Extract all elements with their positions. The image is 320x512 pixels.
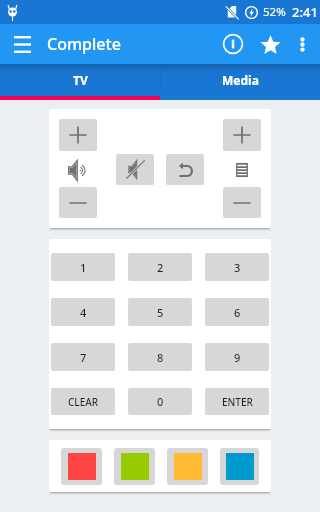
staticText: 0	[157, 394, 164, 409]
button[interactable]: Blue button	[220, 448, 259, 485]
staticText: 3	[234, 260, 241, 275]
button[interactable]: 9	[205, 343, 269, 371]
button[interactable]: 2	[128, 253, 192, 281]
button[interactable]: Open navigation drawer	[6, 28, 38, 60]
button[interactable]: Volume up	[59, 119, 97, 151]
staticText: 6	[234, 305, 241, 320]
staticText: 8	[157, 350, 164, 365]
button[interactable]: Favorite	[252, 24, 288, 64]
button[interactable]: CLEAR	[51, 388, 115, 415]
button[interactable]: 6	[205, 298, 269, 326]
button[interactable]: Yellow button	[167, 448, 208, 485]
button[interactable]: ENTER	[205, 388, 269, 415]
staticText: 5	[157, 305, 164, 320]
button[interactable]: 5	[128, 298, 192, 326]
button[interactable]: 8	[128, 343, 192, 371]
button[interactable]: Red button	[61, 448, 102, 485]
button[interactable]: 1	[51, 253, 115, 281]
staticText: 2:41	[292, 3, 318, 21]
button[interactable]: Back	[166, 154, 204, 185]
button[interactable]: Mute	[116, 154, 154, 185]
staticText: TV	[73, 72, 88, 88]
button[interactable]: Channel up	[223, 119, 261, 151]
button[interactable]: 3	[205, 253, 269, 281]
staticText: 1	[80, 260, 87, 275]
staticText: ENTER	[222, 395, 253, 409]
button[interactable]: 0	[128, 388, 192, 415]
staticText: Media	[222, 72, 259, 88]
button[interactable]: Channel list	[223, 153, 261, 187]
button[interactable]: 4	[51, 298, 115, 326]
button[interactable]: Channel down	[223, 187, 261, 218]
button[interactable]: Green button	[114, 448, 155, 485]
button[interactable]: TV	[0, 64, 160, 96]
button[interactable]: Power	[214, 24, 252, 64]
button[interactable]: Volume	[59, 153, 97, 187]
staticText: 52%	[263, 4, 286, 20]
button[interactable]: Volume down	[59, 187, 97, 218]
staticText: 2	[157, 260, 164, 275]
staticText: 4	[80, 305, 87, 320]
button[interactable]: 7	[51, 343, 115, 371]
staticText: CLEAR	[68, 395, 99, 409]
button[interactable]: Media	[160, 64, 320, 96]
staticText: Complete	[47, 33, 121, 55]
staticText: 9	[234, 350, 241, 365]
button[interactable]: More options	[288, 24, 316, 64]
staticText: 7	[80, 350, 87, 365]
